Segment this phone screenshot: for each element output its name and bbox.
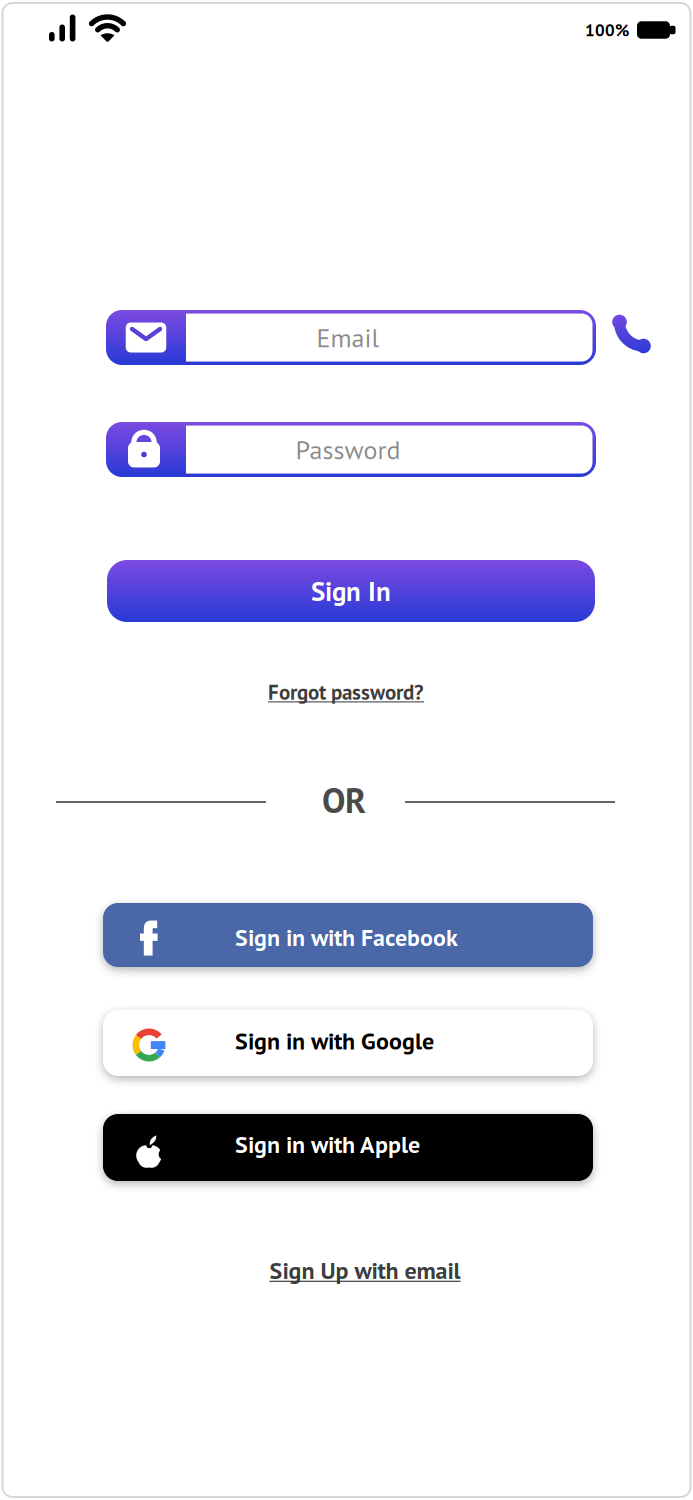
button[interactable]: Sign in with Facebook (103, 903, 593, 967)
staticText: Forgot password? (268, 678, 424, 706)
button[interactable]: Sign In (107, 560, 595, 622)
staticText: Sign in with Google (235, 1025, 434, 1056)
button[interactable]: Sign in with Apple (103, 1114, 593, 1181)
staticText: Sign Up with email (269, 1254, 460, 1286)
staticText: Password (295, 433, 400, 466)
button[interactable]: Sign Up with email (269, 1254, 460, 1286)
staticText: Sign in with Apple (235, 1128, 420, 1160)
staticText: 100% (585, 19, 629, 41)
staticText: Sign In (311, 573, 391, 608)
staticText: OR (322, 777, 366, 823)
button[interactable]: Forgot password? (268, 678, 424, 706)
button[interactable]: Password (106, 422, 596, 477)
button[interactable]: Email (106, 310, 596, 365)
button[interactable]: Sign in with phone (605, 310, 653, 356)
staticText: Email (316, 321, 379, 354)
button[interactable]: Sign in with Google (103, 1010, 593, 1076)
staticText: Sign in with Facebook (235, 921, 458, 953)
